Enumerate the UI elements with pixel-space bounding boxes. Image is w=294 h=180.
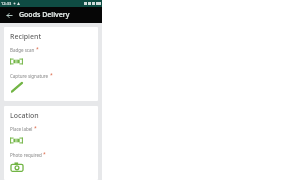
button[interactable]: Recipient <box>4 27 98 101</box>
staticText: Place label <box>10 126 33 132</box>
staticText: Photo required <box>10 152 42 158</box>
staticText: * <box>36 46 39 53</box>
staticText: * <box>34 125 37 132</box>
staticText: Goods Delivery <box>19 10 70 20</box>
staticText: * <box>50 72 53 79</box>
staticText: Location <box>10 111 39 121</box>
button[interactable]: Back <box>4 10 15 21</box>
button[interactable]: Scan barcode <box>10 55 26 67</box>
button[interactable]: Take photo <box>10 160 28 174</box>
staticText: Capture signature <box>10 73 49 79</box>
button[interactable]: Capture signature <box>10 80 28 94</box>
staticText: 12:33 <box>1 1 12 6</box>
button[interactable]: Location <box>4 106 98 180</box>
button[interactable]: Scan barcode <box>10 134 26 146</box>
staticText: * <box>43 151 46 158</box>
staticText: Badge scan <box>10 47 35 53</box>
staticText: Recipient <box>10 32 42 42</box>
